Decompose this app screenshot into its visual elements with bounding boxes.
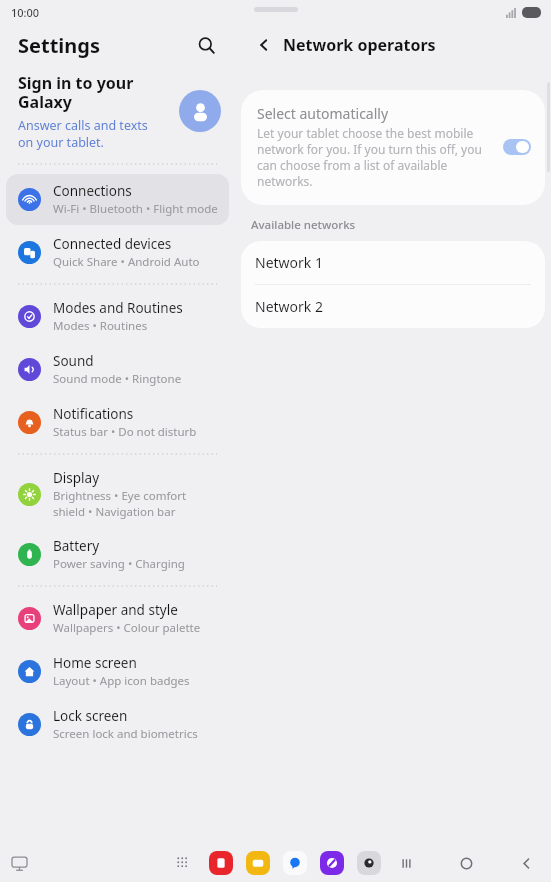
button[interactable]: Modes and Routines: [6, 291, 229, 342]
staticText: Display: [53, 469, 100, 487]
staticText: 10:00: [11, 5, 40, 20]
staticText: Network 1: [255, 253, 323, 272]
staticText: Let your tablet choose the best mobile n…: [257, 125, 491, 189]
button[interactable]: Network 2: [241, 285, 545, 328]
staticText: Sound: [53, 352, 94, 370]
button[interactable]: Battery: [6, 529, 229, 580]
staticText: Wallpapers • Colour palette: [53, 620, 201, 636]
button[interactable]: Sound: [6, 344, 229, 395]
button[interactable]: App 3: [320, 851, 344, 875]
button[interactable]: App 1: [246, 851, 270, 875]
staticText: Modes • Routines: [53, 318, 148, 334]
button[interactable]: Home: [453, 850, 479, 876]
staticText: Network operators: [283, 34, 436, 56]
staticText: Network 2: [255, 297, 323, 316]
button[interactable]: Lock screen: [6, 699, 229, 750]
staticText: Wi-Fi • Bluetooth • Flight mode: [53, 201, 218, 217]
staticText: Sign in to your Galaxy: [18, 72, 144, 113]
staticText: Power saving • Charging: [53, 556, 185, 572]
button[interactable]: Wallpaper and style: [6, 593, 229, 644]
button[interactable]: Sign in to your Galaxy: [0, 66, 235, 173]
staticText: Screen lock and biometrics: [53, 726, 198, 742]
button[interactable]: Back: [513, 850, 539, 876]
button[interactable]: Select automatically toggle: [503, 139, 531, 155]
button[interactable]: App 0: [209, 851, 233, 875]
staticText: Battery: [53, 537, 100, 555]
staticText: Brightness • Eye comfort shield • Naviga…: [53, 488, 221, 519]
staticText: Sound mode • Ringtone: [53, 371, 182, 387]
button[interactable]: Home screen: [6, 646, 229, 697]
button[interactable]: Back: [249, 30, 279, 60]
staticText: Layout • App icon badges: [53, 673, 190, 689]
staticText: Lock screen: [53, 707, 128, 725]
staticText: Connections: [53, 182, 132, 200]
button[interactable]: App 2: [283, 851, 307, 875]
button[interactable]: Recents: [393, 850, 419, 876]
staticText: Status bar • Do not disturb: [53, 424, 197, 440]
staticText: Settings: [18, 32, 100, 59]
button[interactable]: Display: [6, 461, 229, 527]
button[interactable]: Connections: [6, 174, 229, 225]
staticText: Connected devices: [53, 235, 172, 253]
staticText: Modes and Routines: [53, 299, 183, 317]
button[interactable]: Connected devices: [6, 227, 229, 278]
button[interactable]: Notifications: [6, 397, 229, 448]
staticText: Home screen: [53, 654, 137, 672]
button[interactable]: Search: [189, 28, 223, 62]
button[interactable]: App 4: [357, 851, 381, 875]
button[interactable]: Network 1: [241, 241, 545, 284]
staticText: Notifications: [53, 405, 134, 423]
button[interactable]: Recents preview: [6, 850, 32, 876]
staticText: Answer calls and texts on your tablet.: [18, 117, 150, 150]
staticText: Quick Share • Android Auto: [53, 254, 200, 270]
button[interactable]: Select automatically: [241, 90, 545, 205]
staticText: Select automatically: [257, 104, 389, 123]
button[interactable]: Apps: [170, 850, 196, 876]
staticText: Wallpaper and style: [53, 601, 178, 619]
staticText: Available networks: [251, 217, 356, 233]
